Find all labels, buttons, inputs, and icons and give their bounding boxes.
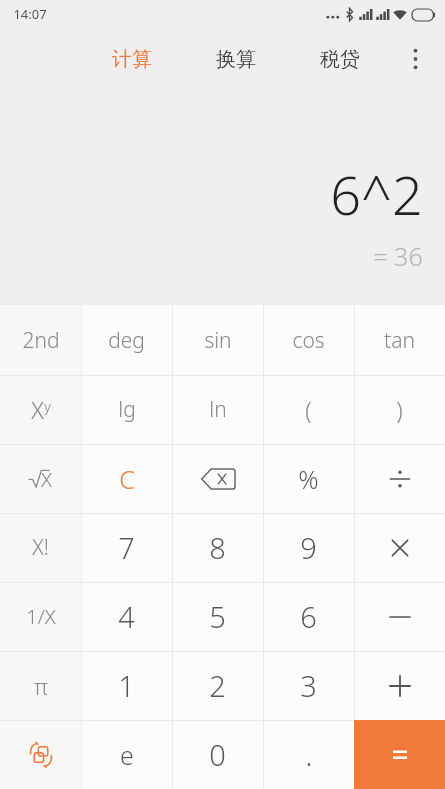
button[interactable]: X! xyxy=(0,513,81,582)
staticText: ln xyxy=(209,395,227,424)
staticText: = 36 xyxy=(373,239,423,273)
button[interactable]: 5 xyxy=(172,582,263,651)
staticText: 7 xyxy=(118,528,135,567)
button[interactable]: ln xyxy=(172,375,263,444)
button[interactable]: 1 xyxy=(81,651,172,720)
button[interactable]: C xyxy=(81,444,172,513)
button[interactable]: X xyxy=(0,444,81,513)
button[interactable]: π xyxy=(0,651,81,720)
staticText: y xyxy=(44,397,51,416)
button[interactable]: = xyxy=(354,720,445,789)
staticText: 1/X xyxy=(26,603,56,630)
button[interactable]: ( xyxy=(263,375,354,444)
button[interactable] xyxy=(354,513,445,582)
staticText: e xyxy=(120,738,134,772)
button[interactable]: 6 xyxy=(263,582,354,651)
button[interactable]: 计算 xyxy=(100,41,164,78)
staticText: 换算 xyxy=(216,47,256,72)
staticText: tan xyxy=(384,326,415,355)
button[interactable]: X xyxy=(0,375,81,444)
button[interactable]: 2 xyxy=(172,651,263,720)
button[interactable]: 1/X xyxy=(0,582,81,651)
button[interactable]: tan xyxy=(354,305,445,375)
button[interactable]: ) xyxy=(354,375,445,444)
button[interactable]: 7 xyxy=(81,513,172,582)
button[interactable]: lg xyxy=(81,375,172,444)
staticText: X xyxy=(31,394,44,425)
staticText: 3 xyxy=(300,666,317,705)
button[interactable]: . xyxy=(263,720,354,789)
button[interactable]: 8 xyxy=(172,513,263,582)
staticText: X xyxy=(41,466,52,493)
staticText: 14:07 xyxy=(13,5,47,23)
staticText: 6^2 xyxy=(330,157,423,231)
button[interactable] xyxy=(354,582,445,651)
staticText: 9 xyxy=(300,528,317,567)
staticText: C xyxy=(119,462,135,496)
button[interactable]: 2nd xyxy=(0,305,81,375)
staticText: . xyxy=(305,735,313,774)
staticText: ( xyxy=(305,394,312,425)
staticText: X! xyxy=(32,533,49,562)
staticText: 1 xyxy=(118,666,135,705)
button[interactable]: 9 xyxy=(263,513,354,582)
staticText: sin xyxy=(204,326,232,355)
staticText: 4 xyxy=(118,597,135,636)
button[interactable]: 换算 xyxy=(204,41,268,78)
staticText: lg xyxy=(118,395,136,424)
button[interactable]: 3 xyxy=(263,651,354,720)
staticText: 2nd xyxy=(22,326,60,355)
staticText: deg xyxy=(108,326,145,355)
staticText: % xyxy=(298,462,319,496)
staticText: π xyxy=(34,671,48,701)
button[interactable]: More options xyxy=(393,37,437,81)
staticText: 计算 xyxy=(112,47,152,72)
staticText: cos xyxy=(292,326,325,355)
staticText: 0 xyxy=(209,735,226,774)
button[interactable]: % xyxy=(263,444,354,513)
staticText: 2 xyxy=(209,666,226,705)
button[interactable]: 4 xyxy=(81,582,172,651)
button[interactable]: 0 xyxy=(172,720,263,789)
button[interactable]: 税贷 xyxy=(308,41,372,78)
button[interactable]: sin xyxy=(172,305,263,375)
button[interactable]: deg xyxy=(81,305,172,375)
staticText: = xyxy=(391,734,409,775)
button[interactable] xyxy=(354,651,445,720)
button[interactable]: Backspace xyxy=(172,444,263,513)
button[interactable]: cos xyxy=(263,305,354,375)
button[interactable] xyxy=(354,444,445,513)
staticText: 税贷 xyxy=(320,47,360,72)
button[interactable]: Convert xyxy=(0,720,81,789)
staticText: 5 xyxy=(209,597,226,636)
staticText: 6 xyxy=(300,597,317,636)
staticText: ) xyxy=(396,394,403,425)
staticText: 8 xyxy=(209,528,226,567)
button[interactable]: e xyxy=(81,720,172,789)
